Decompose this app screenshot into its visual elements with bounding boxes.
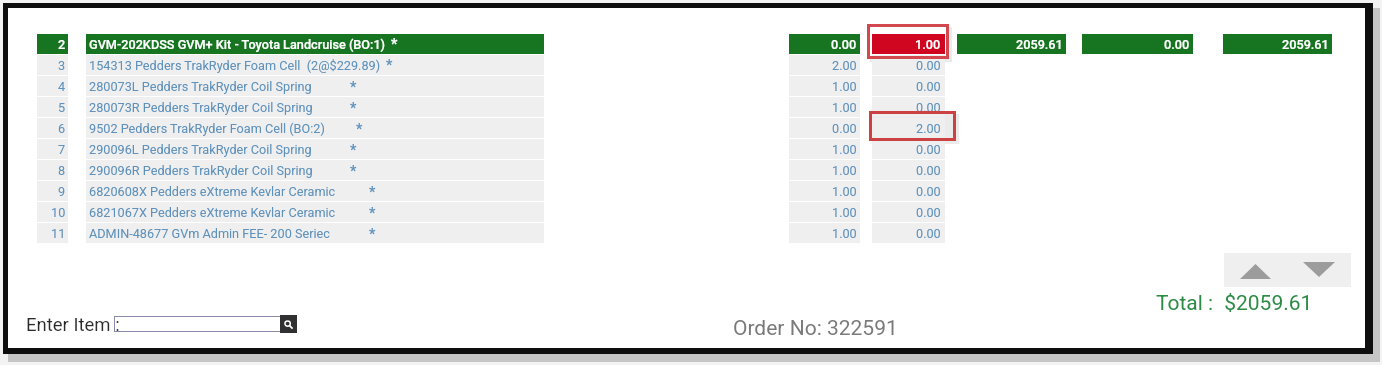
- staticText: 1.00: [832, 205, 857, 220]
- staticText: 1.00: [832, 100, 857, 115]
- staticText: 1.00: [832, 226, 857, 241]
- staticText: GVM-202KDSS GVM+ Kit - Toyota Landcruise…: [89, 37, 386, 52]
- button[interactable]: Scroll up: [1240, 264, 1271, 279]
- staticText: 280073L Pedders TrakRyder Coil Spring: [89, 79, 312, 94]
- button[interactable]: 0.00: [872, 97, 945, 117]
- staticText: *: [369, 184, 376, 200]
- button[interactable]: 290096L Pedders TrakRyder Coil Spring: [86, 139, 544, 159]
- staticText: 6821067X Pedders eXtreme Kevlar Ceramic: [89, 205, 336, 220]
- button[interactable]: 6821067X Pedders eXtreme Kevlar Ceramic: [86, 202, 544, 222]
- staticText: 9: [58, 184, 66, 199]
- staticText: 1.00: [832, 163, 857, 178]
- button[interactable]: 0.00: [789, 34, 860, 54]
- staticText: 2.00: [832, 58, 857, 73]
- button[interactable]: 6: [37, 118, 68, 138]
- button[interactable]: GVM-202KDSS GVM+ Kit - Toyota Landcruise…: [86, 34, 544, 54]
- button[interactable]: 1.00: [789, 97, 860, 117]
- button[interactable]: 0.00: [872, 55, 945, 75]
- button[interactable]: 11: [37, 223, 68, 243]
- staticText: 2.00: [916, 121, 941, 136]
- staticText: 5: [58, 100, 66, 115]
- staticText: 280073R Pedders TrakRyder Coil Spring: [89, 100, 313, 115]
- staticText: 10: [51, 205, 66, 220]
- staticText: Total :: [1156, 291, 1219, 316]
- staticText: 0.00: [916, 205, 941, 220]
- button[interactable]: 1.00: [789, 223, 860, 243]
- button[interactable]: 6820608X Pedders eXtreme Kevlar Ceramic: [86, 181, 544, 201]
- button[interactable]: 2.00: [789, 55, 860, 75]
- button[interactable]: 1.00: [789, 139, 860, 159]
- staticText: 0.00: [916, 142, 941, 157]
- button[interactable]: 0.00: [872, 181, 945, 201]
- staticText: 6: [58, 121, 66, 136]
- staticText: 0.00: [916, 184, 941, 199]
- staticText: 0.00: [916, 58, 941, 73]
- staticText: 2059.61: [1282, 37, 1329, 52]
- button[interactable]: ADMIN-48677 GVm Admin FEE- 200 Seriec: [86, 223, 544, 243]
- staticText: 1.00: [832, 184, 857, 199]
- button[interactable]: 9: [37, 181, 68, 201]
- staticText: *: [369, 226, 376, 242]
- button[interactable]: 3: [37, 55, 68, 75]
- staticText: 3: [58, 58, 66, 73]
- staticText: 2: [58, 37, 66, 52]
- staticText: 1.00: [915, 37, 941, 52]
- staticText: Order No: 322591: [733, 316, 898, 341]
- staticText: *: [350, 79, 357, 95]
- staticText: 0.00: [831, 37, 857, 52]
- staticText: 0.00: [916, 226, 941, 241]
- button[interactable]: 0.00: [1082, 34, 1193, 54]
- staticText: $2059.61: [1219, 291, 1313, 316]
- button[interactable]: 2059.61: [1223, 34, 1332, 54]
- staticText: *: [350, 100, 357, 116]
- button[interactable]: 290096R Pedders TrakRyder Coil Spring: [86, 160, 544, 180]
- button[interactable]: 1.00: [872, 34, 945, 54]
- button[interactable]: 0.00: [872, 76, 945, 96]
- button[interactable]: 7: [37, 139, 68, 159]
- staticText: 154313 Pedders TrakRyder Foam Cell (2@$2…: [89, 58, 381, 73]
- staticText: ADMIN-48677 GVm Admin FEE- 200 Seriec: [89, 226, 330, 241]
- staticText: *: [391, 36, 398, 52]
- staticText: 1.00: [832, 79, 857, 94]
- staticText: 0.00: [832, 121, 857, 136]
- button[interactable]: 280073R Pedders TrakRyder Coil Spring: [86, 97, 544, 117]
- button[interactable]: [114, 316, 281, 332]
- button[interactable]: 0.00: [789, 118, 860, 138]
- button[interactable]: 1.00: [789, 202, 860, 222]
- button[interactable]: 2059.61: [957, 34, 1066, 54]
- staticText: 6820608X Pedders eXtreme Kevlar Ceramic: [89, 184, 336, 199]
- button[interactable]: 1.00: [789, 76, 860, 96]
- staticText: *: [356, 121, 363, 137]
- button[interactable]: Search: [280, 315, 297, 333]
- staticText: 1.00: [832, 142, 857, 157]
- button[interactable]: 0.00: [872, 202, 945, 222]
- staticText: 9502 Pedders TrakRyder Foam Cell (BO:2): [89, 121, 325, 136]
- button[interactable]: 280073L Pedders TrakRyder Coil Spring: [86, 76, 544, 96]
- button[interactable]: 0.00: [872, 223, 945, 243]
- button[interactable]: 2: [37, 34, 68, 54]
- button[interactable]: 5: [37, 97, 68, 117]
- staticText: Enter Item :: [26, 314, 120, 336]
- button[interactable]: 1.00: [789, 181, 860, 201]
- staticText: 290096R Pedders TrakRyder Coil Spring: [89, 163, 313, 178]
- staticText: 2059.61: [1016, 37, 1063, 52]
- staticText: 290096L Pedders TrakRyder Coil Spring: [89, 142, 312, 157]
- staticText: *: [369, 205, 376, 221]
- staticText: *: [350, 142, 357, 158]
- button[interactable]: 9502 Pedders TrakRyder Foam Cell (BO:2): [86, 118, 544, 138]
- button[interactable]: 0.00: [872, 139, 945, 159]
- staticText: 0.00: [1164, 37, 1190, 52]
- button[interactable]: 1.00: [789, 160, 860, 180]
- button[interactable]: 2.00: [872, 118, 945, 138]
- button[interactable]: 8: [37, 160, 68, 180]
- button[interactable]: Scroll down: [1303, 262, 1335, 277]
- staticText: 11: [51, 226, 66, 241]
- button[interactable]: 4: [37, 76, 68, 96]
- staticText: 0.00: [916, 79, 941, 94]
- button[interactable]: 10: [37, 202, 68, 222]
- staticText: 7: [58, 142, 66, 157]
- staticText: *: [350, 163, 357, 179]
- button[interactable]: 0.00: [872, 160, 945, 180]
- staticText: 8: [58, 163, 66, 178]
- button[interactable]: 154313 Pedders TrakRyder Foam Cell (2@$2…: [86, 55, 544, 75]
